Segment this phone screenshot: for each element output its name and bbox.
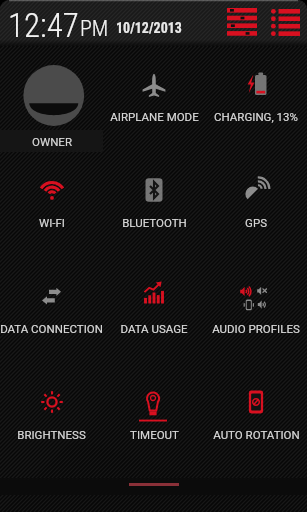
button[interactable]: Quick settings xyxy=(227,8,257,36)
staticText: DATA CONNECTION xyxy=(0,322,103,335)
button[interactable]: OWNER xyxy=(0,46,103,152)
button[interactable]: Notifications xyxy=(271,9,300,36)
staticText: WI-FI xyxy=(39,216,65,229)
button[interactable]: TIMEOUT xyxy=(103,364,205,470)
staticText: CHARGING, 13% xyxy=(214,110,298,123)
staticText: AIRPLANE MODE xyxy=(110,110,199,123)
staticText: 12:47 xyxy=(8,6,79,45)
button[interactable]: BRIGHTNESS xyxy=(0,364,103,470)
button[interactable]: GPS xyxy=(205,152,307,258)
button[interactable]: DATA USAGE xyxy=(103,258,205,364)
staticText: GPS xyxy=(245,216,267,229)
button[interactable]: DATA CONNECTION xyxy=(0,258,103,364)
button[interactable]: AUTO ROTATION xyxy=(205,364,307,470)
button[interactable]: Close panel xyxy=(0,478,307,495)
staticText: AUTO ROTATION xyxy=(213,428,300,441)
staticText: OWNER xyxy=(32,135,72,148)
staticText: BRIGHTNESS xyxy=(17,428,86,441)
staticText: TIMEOUT xyxy=(130,428,179,441)
staticText: 10/12/2013 xyxy=(116,20,182,36)
staticText: BLUETOOTH xyxy=(122,216,187,229)
staticText: DATA USAGE xyxy=(120,322,188,335)
button[interactable]: BLUETOOTH xyxy=(103,152,205,258)
button[interactable]: CHARGING, 13% xyxy=(205,46,307,152)
staticText: PM xyxy=(80,16,109,42)
button[interactable]: WI-FI xyxy=(0,152,103,258)
staticText: AUDIO PROFILES xyxy=(212,322,300,335)
button[interactable]: AIRPLANE MODE xyxy=(103,46,205,152)
button[interactable]: AUDIO PROFILES xyxy=(205,258,307,364)
